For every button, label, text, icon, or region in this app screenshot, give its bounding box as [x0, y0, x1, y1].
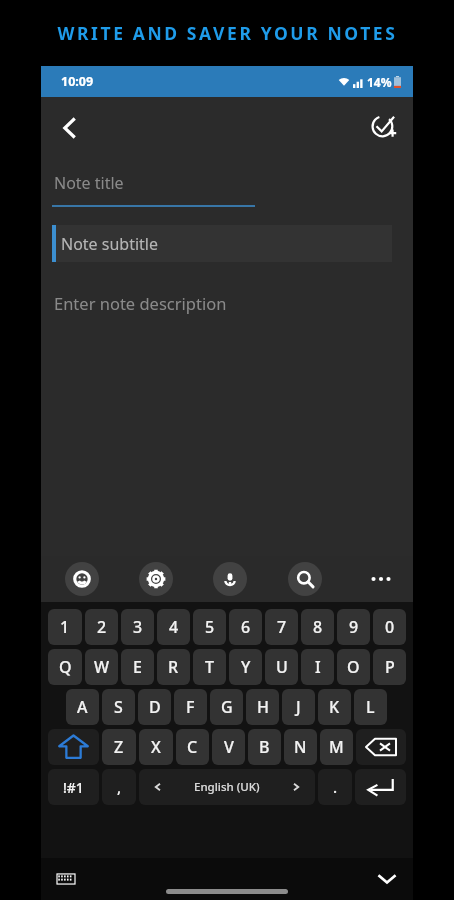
- staticText: Y: [241, 656, 251, 678]
- button[interactable]: L: [354, 689, 387, 725]
- button[interactable]: 9: [337, 609, 370, 645]
- staticText: Q: [59, 656, 72, 678]
- button[interactable]: English (UK): [139, 769, 315, 805]
- button[interactable]: Note subtitle: [52, 225, 392, 262]
- staticText: X: [151, 736, 161, 758]
- button[interactable]: 8: [301, 609, 334, 645]
- button[interactable]: 0: [373, 609, 406, 645]
- staticText: R: [168, 656, 179, 678]
- staticText: Z: [114, 736, 124, 758]
- button[interactable]: P: [373, 649, 406, 685]
- button[interactable]: H: [246, 689, 279, 725]
- staticText: Note title: [54, 172, 124, 194]
- button[interactable]: C: [176, 729, 209, 765]
- button[interactable]: .: [318, 769, 352, 805]
- button[interactable]: Emoji: [65, 562, 99, 596]
- staticText: V: [224, 736, 234, 758]
- staticText: 0: [385, 616, 395, 638]
- staticText: L: [366, 696, 375, 718]
- staticText: K: [329, 696, 340, 718]
- button[interactable]: 3: [121, 609, 154, 645]
- button[interactable]: U: [265, 649, 298, 685]
- button[interactable]: G: [210, 689, 243, 725]
- staticText: O: [347, 656, 360, 678]
- button[interactable]: Q: [48, 649, 82, 685]
- staticText: B: [259, 736, 270, 758]
- staticText: 8: [313, 616, 323, 638]
- button[interactable]: V: [212, 729, 245, 765]
- button[interactable]: Search: [288, 562, 322, 596]
- button[interactable]: E: [121, 649, 154, 685]
- button[interactable]: X: [139, 729, 173, 765]
- button[interactable]: 5: [193, 609, 226, 645]
- button[interactable]: Enter note description: [54, 292, 402, 556]
- staticText: WRITE AND SAVER YOUR NOTES: [57, 21, 398, 45]
- button[interactable]: Backspace: [356, 729, 406, 765]
- staticText: .: [333, 777, 338, 797]
- button[interactable]: Save note: [361, 105, 407, 151]
- staticText: !#1: [63, 778, 84, 797]
- button[interactable]: A: [66, 689, 99, 725]
- staticText: G: [221, 696, 233, 718]
- staticText: F: [186, 696, 195, 718]
- staticText: S: [114, 696, 123, 718]
- button[interactable]: Switch keyboard: [49, 862, 83, 896]
- button[interactable]: J: [282, 689, 315, 725]
- button[interactable]: 6: [229, 609, 262, 645]
- button[interactable]: Shift: [48, 729, 99, 765]
- button[interactable]: More options: [363, 561, 399, 597]
- button[interactable]: Y: [229, 649, 262, 685]
- staticText: W: [94, 656, 110, 678]
- button[interactable]: Hide keyboard: [369, 861, 405, 897]
- staticText: P: [385, 656, 395, 678]
- staticText: U: [276, 656, 288, 678]
- staticText: 9: [349, 616, 359, 638]
- staticText: 10:09: [61, 73, 94, 90]
- button[interactable]: Back: [47, 105, 93, 151]
- staticText: 3: [133, 616, 143, 638]
- staticText: I: [315, 656, 321, 678]
- staticText: E: [133, 656, 142, 678]
- staticText: 2: [97, 616, 107, 638]
- button[interactable]: D: [138, 689, 171, 725]
- button[interactable]: R: [157, 649, 190, 685]
- button[interactable]: I: [301, 649, 334, 685]
- button[interactable]: T: [193, 649, 226, 685]
- staticText: Enter note description: [54, 292, 227, 314]
- staticText: N: [294, 736, 307, 758]
- staticText: M: [329, 736, 344, 758]
- button[interactable]: 7: [265, 609, 298, 645]
- button[interactable]: !#1: [48, 769, 99, 805]
- button[interactable]: M: [320, 729, 353, 765]
- staticText: C: [187, 736, 198, 758]
- button[interactable]: 2: [85, 609, 118, 645]
- button[interactable]: 4: [157, 609, 190, 645]
- staticText: Note subtitle: [61, 233, 159, 255]
- button[interactable]: F: [174, 689, 207, 725]
- staticText: A: [77, 696, 88, 718]
- button[interactable]: ,: [102, 769, 136, 805]
- button[interactable]: O: [337, 649, 370, 685]
- staticText: 14%: [367, 74, 392, 90]
- button[interactable]: Voice input: [213, 562, 247, 596]
- button[interactable]: B: [248, 729, 281, 765]
- staticText: 4: [169, 616, 179, 638]
- staticText: 6: [241, 616, 251, 638]
- button[interactable]: 1: [48, 609, 82, 645]
- button[interactable]: S: [102, 689, 135, 725]
- staticText: English (UK): [194, 779, 260, 795]
- button[interactable]: Settings: [139, 562, 173, 596]
- staticText: J: [296, 696, 301, 718]
- button[interactable]: Z: [102, 729, 136, 765]
- button[interactable]: W: [85, 649, 118, 685]
- staticText: D: [149, 696, 161, 718]
- staticText: ,: [117, 777, 122, 797]
- button[interactable]: K: [318, 689, 351, 725]
- staticText: 7: [277, 616, 287, 638]
- button[interactable]: Enter: [355, 769, 406, 805]
- staticText: H: [257, 696, 269, 718]
- button[interactable]: N: [284, 729, 317, 765]
- staticText: 5: [205, 616, 215, 638]
- staticText: T: [205, 656, 214, 678]
- button[interactable]: Note title: [52, 159, 402, 207]
